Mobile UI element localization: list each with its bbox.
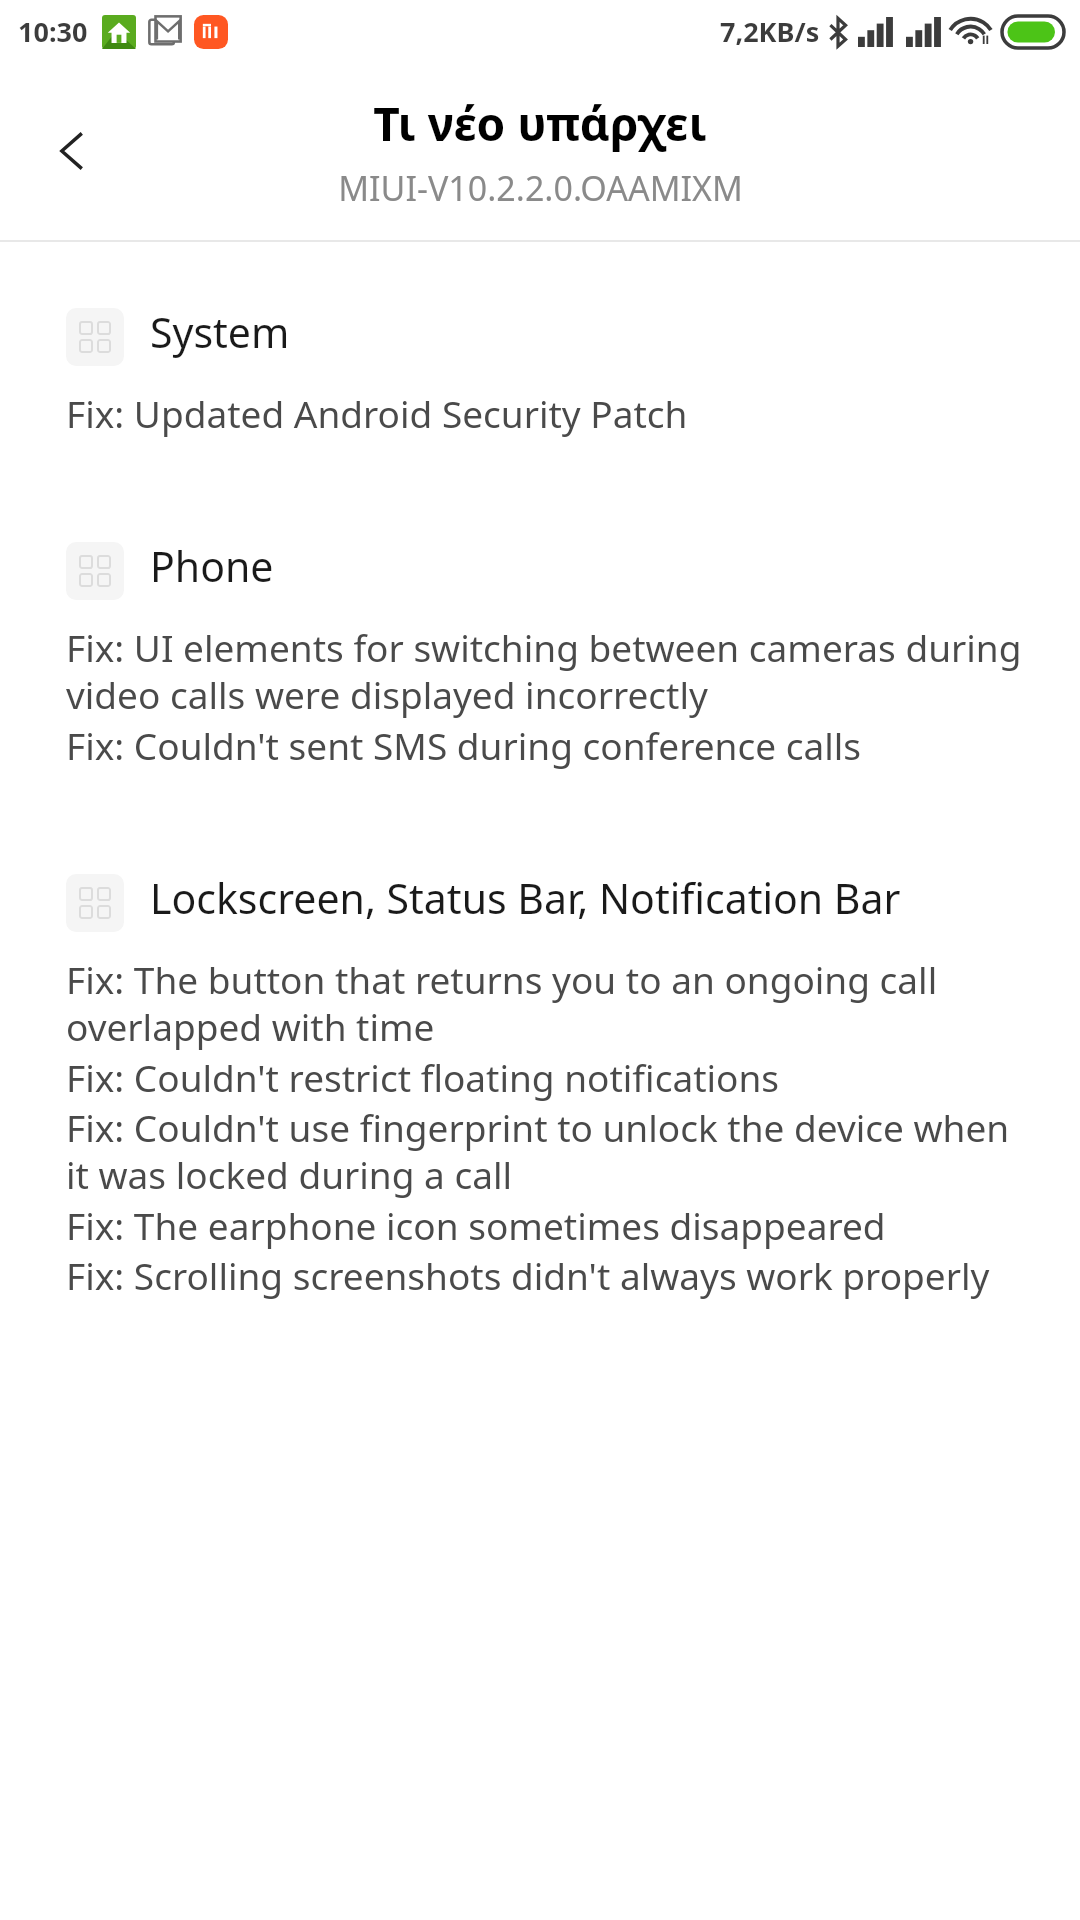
staticText: 10:30 bbox=[18, 13, 88, 50]
button[interactable]: Lockscreen, Status Bar, Notification Bar bbox=[0, 870, 1080, 932]
staticText: Τι νέο υπάρχει bbox=[373, 92, 707, 155]
staticText: Lockscreen, Status Bar, Notification Bar bbox=[150, 870, 901, 926]
staticText: Fix: Couldn't sent SMS during conference… bbox=[66, 720, 861, 770]
staticText: Fix: UI elements for switching between c… bbox=[66, 622, 1024, 720]
staticText: Fix: Scrolling screenshots didn't always… bbox=[66, 1250, 990, 1300]
staticText: Fix: The button that returns you to an o… bbox=[66, 954, 1024, 1052]
staticText: Fix: Updated Android Security Patch bbox=[66, 388, 688, 438]
button[interactable]: System bbox=[0, 304, 1080, 366]
button[interactable]: Back bbox=[30, 108, 116, 194]
staticText: Fix: Couldn't restrict floating notifica… bbox=[66, 1052, 780, 1102]
staticText: Fix: The earphone icon sometimes disappe… bbox=[66, 1200, 886, 1250]
staticText: Fix: Couldn't use fingerprint to unlock … bbox=[66, 1102, 1024, 1200]
staticText: System bbox=[150, 304, 290, 360]
button[interactable]: Phone bbox=[0, 538, 1080, 600]
staticText: Phone bbox=[150, 538, 274, 594]
staticText: MIUI-V10.2.2.0.OAAMIXM bbox=[338, 165, 743, 211]
staticText: 7,2KB/s bbox=[720, 13, 820, 50]
